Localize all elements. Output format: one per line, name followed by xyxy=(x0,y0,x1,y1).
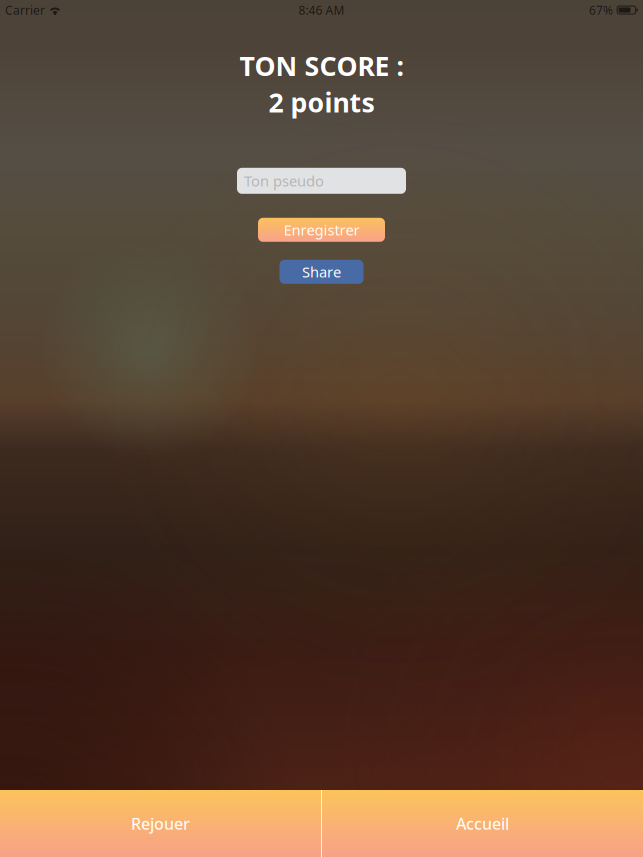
button[interactable]: Rejouer xyxy=(0,790,321,857)
staticText: TON SCORE : xyxy=(239,48,403,83)
staticText: 2 points xyxy=(268,84,374,120)
staticText: Enregistrer xyxy=(283,220,359,240)
staticText: Accueil xyxy=(456,813,509,834)
staticText: Share xyxy=(302,262,341,282)
button[interactable]: Accueil xyxy=(322,790,643,857)
staticText: Rejouer xyxy=(131,813,190,834)
staticText: 67% xyxy=(589,2,613,18)
staticText: 8:46 AM xyxy=(298,2,344,18)
staticText: Ton pseudo xyxy=(244,171,324,191)
button[interactable]: Enregistrer xyxy=(258,218,385,242)
staticText: Carrier xyxy=(5,2,45,18)
button[interactable]: Share xyxy=(279,260,363,284)
